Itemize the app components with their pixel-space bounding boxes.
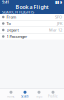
button[interactable]: To (0, 20, 64, 26)
button[interactable]: Profile (46, 89, 60, 100)
staticText: Search (21, 95, 29, 98)
button[interactable]: Home (4, 89, 18, 100)
staticText: 1 Passenger (6, 34, 27, 39)
staticText: JFK (57, 21, 62, 26)
button[interactable]: 1 Passenger (0, 33, 64, 39)
staticText: ▮▮ ◗ (55, 0, 62, 4)
staticText: Trips (36, 95, 42, 98)
button[interactable]: From (0, 14, 64, 20)
staticText: Home (7, 95, 15, 98)
staticText: SEARCH FLIGHTS (2, 9, 34, 15)
staticText: Depart (6, 27, 18, 33)
staticText: To (6, 21, 10, 26)
staticText: Profile (48, 95, 58, 98)
staticText: Book a Flight (15, 3, 48, 11)
staticText: SFO (55, 14, 62, 20)
button[interactable]: Trips (32, 89, 46, 100)
staticText: From (6, 14, 16, 20)
staticText: Mar 12 (49, 27, 62, 33)
button[interactable]: Search (18, 89, 32, 100)
staticText: 9:41 (2, 0, 9, 5)
button[interactable]: Depart (0, 27, 64, 33)
